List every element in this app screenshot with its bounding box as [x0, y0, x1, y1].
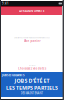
staticText: LES TEMPS PARTIELS [6, 84, 58, 91]
staticText: Mon panier [23, 39, 40, 43]
staticText: DÈS MAINTENANT [20, 91, 43, 95]
staticText: Livraison [28, 64, 35, 66]
staticText: LIVRAISON OFFERTE [19, 9, 44, 13]
staticText: 9:41 [2, 2, 9, 5]
staticText: Sélectionnez votre formule d'abonnement … [14, 37, 50, 38]
staticText: JOBS D'ÉTÉ ET [14, 77, 49, 84]
staticText: JOBS ETUDIANTS [2, 73, 24, 77]
staticText: Choisissez vos dates [18, 67, 46, 70]
